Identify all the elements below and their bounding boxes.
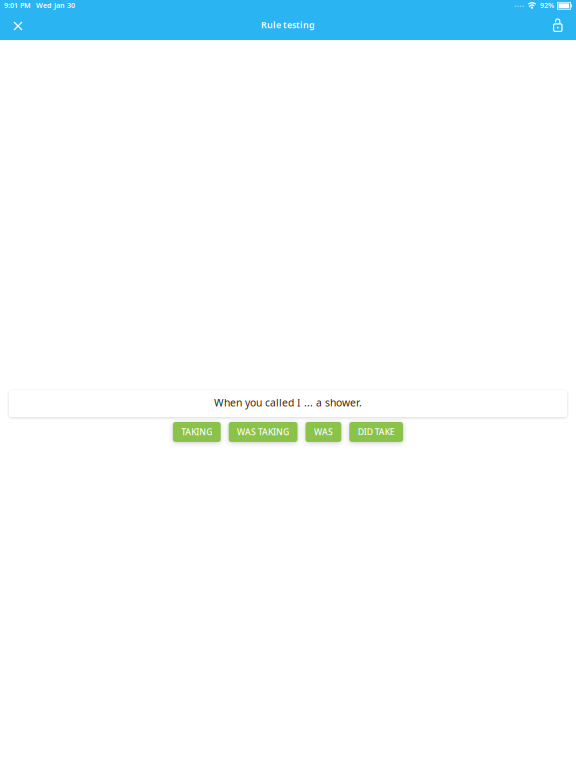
staticText: Wed Jan 30 xyxy=(36,0,75,10)
button[interactable]: WAS xyxy=(305,422,341,442)
staticText: WAS TAKING xyxy=(237,426,289,438)
button[interactable]: TAKING xyxy=(173,422,221,442)
button[interactable]: DID TAKE xyxy=(349,422,403,442)
staticText: WAS xyxy=(314,426,333,438)
staticText: 92% xyxy=(540,0,554,10)
staticText: Rule testing xyxy=(261,19,315,31)
button[interactable]: WAS TAKING xyxy=(229,422,297,442)
staticText: 9:01 PM xyxy=(4,0,31,10)
staticText: DID TAKE xyxy=(358,426,395,438)
button[interactable]: Lock answers xyxy=(540,12,576,40)
button[interactable]: Close xyxy=(0,12,36,40)
staticText: TAKING xyxy=(181,426,212,438)
staticText: When you called I ... a shower. xyxy=(214,396,362,409)
